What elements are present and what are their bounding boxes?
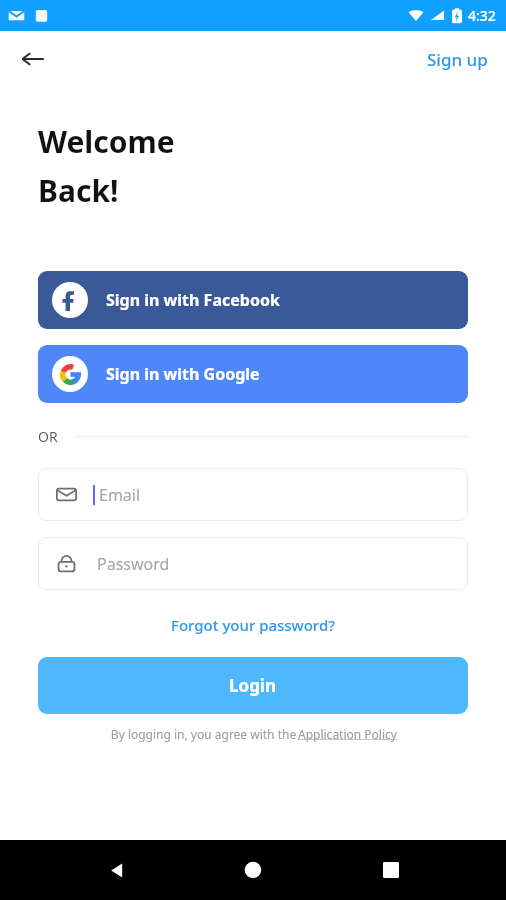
button[interactable]: Application Policy — [298, 726, 397, 742]
button[interactable]: Back — [12, 38, 54, 80]
staticText: 4:32 — [468, 6, 496, 25]
button[interactable]: Forgot your password? — [161, 611, 345, 639]
staticText: Forgot your password? — [171, 615, 335, 635]
button[interactable]: Sign in with Google — [38, 345, 468, 403]
button[interactable]: Login — [38, 657, 468, 714]
button[interactable]: Sign up — [419, 42, 496, 77]
staticText: Application Policy — [298, 726, 397, 742]
staticText: Welcome — [38, 121, 175, 162]
staticText: By logging in, you agree with the — [109, 726, 298, 742]
staticText: Email — [99, 484, 141, 506]
button[interactable]: Home — [231, 848, 275, 892]
staticText: Sign in with Google — [106, 363, 260, 385]
staticText: Sign in with Facebook — [106, 289, 280, 311]
staticText: Back! — [38, 170, 119, 211]
staticText: OR — [38, 427, 58, 446]
button[interactable]: Back — [94, 848, 138, 892]
button[interactable]: Sign in with Facebook — [38, 271, 468, 329]
button[interactable]: Recents — [369, 848, 413, 892]
staticText: Password — [97, 553, 170, 575]
button[interactable]: Password — [38, 537, 468, 590]
staticText: Login — [229, 674, 277, 697]
staticText: Sign up — [427, 48, 488, 71]
button[interactable]: Email — [38, 468, 468, 521]
